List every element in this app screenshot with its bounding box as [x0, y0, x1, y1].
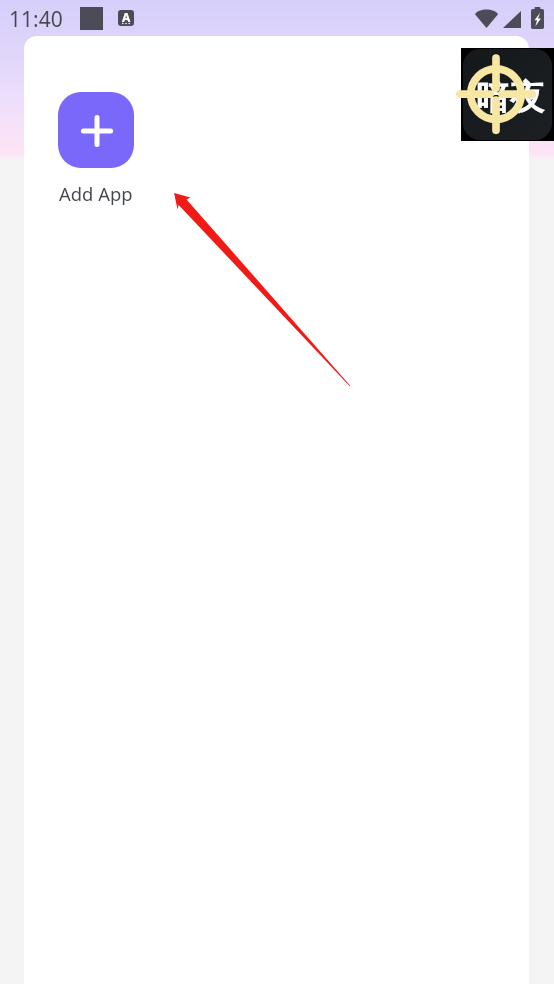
- other: Mobile signal: [503, 11, 521, 28]
- staticText: Add App: [59, 181, 133, 206]
- other: Battery charging: [531, 7, 544, 29]
- other: Wi-Fi: [475, 9, 498, 28]
- staticText: 暗夜: [476, 76, 544, 119]
- staticText: A: [122, 10, 131, 25]
- button[interactable]: Add App: [58, 92, 134, 206]
- staticText: 11:40: [9, 5, 63, 34]
